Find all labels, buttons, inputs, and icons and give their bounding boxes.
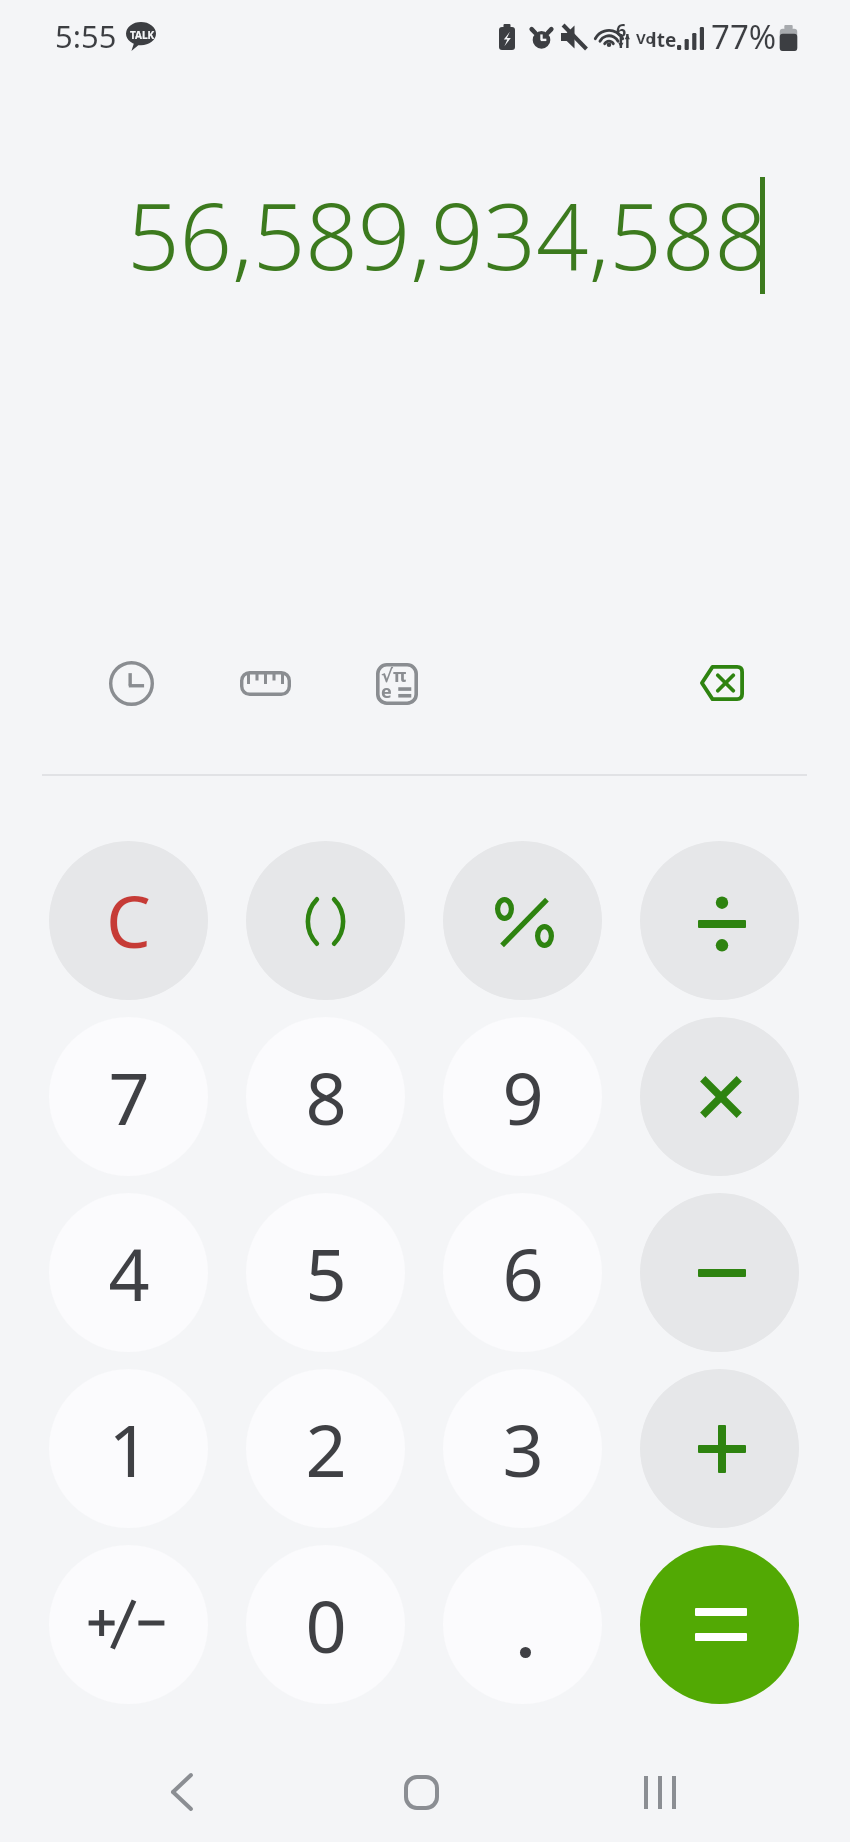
button[interactable]: 7 (49, 1017, 208, 1176)
staticText: 2 (305, 1400, 347, 1498)
button[interactable]: Percent (443, 841, 602, 1000)
button[interactable]: 6 (443, 1193, 602, 1352)
button[interactable]: 9 (443, 1017, 602, 1176)
staticText: Vo (636, 28, 655, 48)
staticText: 77% (711, 14, 777, 59)
staticText: √π (381, 663, 407, 688)
button[interactable]: 4 (49, 1193, 208, 1352)
button[interactable]: Parentheses (246, 841, 405, 1000)
button[interactable]: Divide (640, 841, 799, 1000)
staticText: 6 (502, 1224, 544, 1322)
button[interactable]: Plus (640, 1369, 799, 1528)
staticText: 5 (305, 1224, 347, 1322)
staticText: 4 (108, 1224, 150, 1322)
button[interactable]: Decimal point (443, 1545, 602, 1704)
button[interactable]: Plus minus (49, 1545, 208, 1704)
button[interactable]: Back (132, 1742, 232, 1842)
staticText: 8 (305, 1048, 347, 1146)
button[interactable]: Minus (640, 1193, 799, 1352)
button[interactable]: 2 (246, 1369, 405, 1528)
button[interactable]: Backspace (688, 650, 754, 716)
button[interactable]: 1 (49, 1369, 208, 1528)
staticText: 7 (108, 1048, 150, 1146)
staticText: 56,589,934,588 (127, 172, 767, 297)
button[interactable]: 0 (246, 1545, 405, 1704)
button[interactable]: 3 (443, 1369, 602, 1528)
button[interactable]: Scientific calculator (364, 651, 430, 717)
button[interactable]: 5 (246, 1193, 405, 1352)
staticText: 9 (502, 1048, 544, 1146)
staticText: lte (651, 27, 677, 53)
button[interactable]: Equals (640, 1545, 799, 1704)
button[interactable]: Recent apps (610, 1742, 710, 1842)
staticText: 3 (502, 1400, 544, 1498)
staticText: 0 (305, 1576, 347, 1674)
staticText: 5:55 (55, 15, 117, 57)
button[interactable]: History (98, 650, 164, 716)
staticText: 1 (108, 1400, 150, 1498)
staticText: e (381, 679, 392, 704)
button[interactable]: Unit converter (232, 650, 298, 716)
button[interactable]: 8 (246, 1017, 405, 1176)
staticText: TALK (130, 28, 155, 42)
button[interactable]: C (49, 841, 208, 1000)
button[interactable]: Home (371, 1742, 471, 1842)
staticText: C (106, 872, 151, 969)
staticText: 6 (616, 18, 627, 43)
button[interactable]: Multiply (640, 1017, 799, 1176)
